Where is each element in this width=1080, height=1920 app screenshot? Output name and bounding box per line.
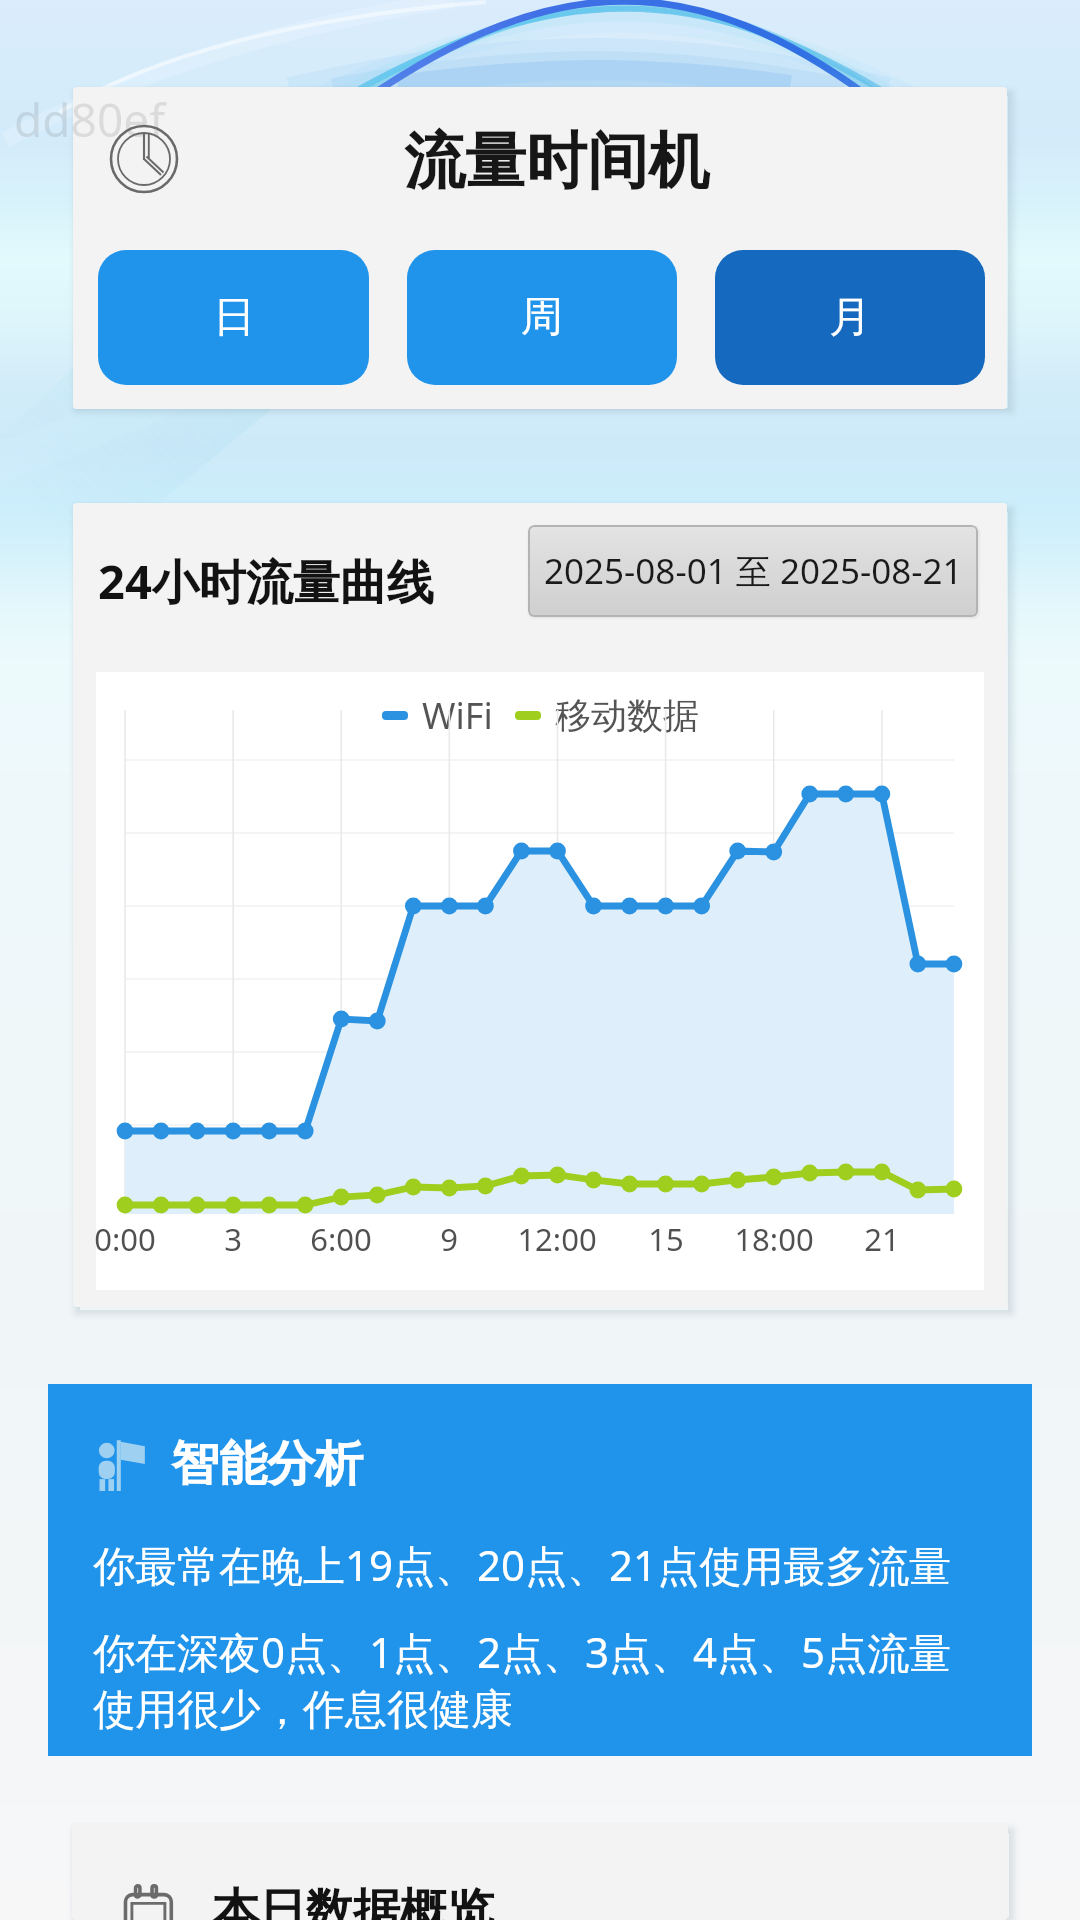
staticText: 2025-08-01 至 2025-08-21 [544, 547, 963, 595]
button[interactable]: 周 [407, 250, 677, 385]
staticText: 移动数据 [555, 693, 699, 738]
button[interactable]: 日 [98, 250, 369, 385]
staticText: 9 [369, 1218, 529, 1260]
staticText: 流量时间机 [404, 123, 709, 200]
staticText: 日 [213, 291, 255, 344]
staticText: 月 [829, 291, 871, 344]
staticText: 24小时流量曲线 [98, 549, 434, 613]
button[interactable]: Calendar [72, 1824, 1008, 1920]
staticText: 本日数据概览 [212, 1882, 494, 1920]
staticText: 21 [802, 1218, 962, 1260]
staticText: dd80ef [14, 88, 165, 151]
staticText: 12:00 [477, 1218, 637, 1260]
staticText: 智能分析 [171, 1434, 363, 1494]
staticText: 18:00 [694, 1218, 854, 1260]
button[interactable]: Clock [109, 124, 179, 194]
staticText: 3 [153, 1218, 313, 1260]
button[interactable]: 月 [715, 250, 985, 385]
staticText: 你在深夜0点、1点、2点、3点、4点、5点流量使用很少，作息很健康 [93, 1623, 969, 1736]
button[interactable]: 智能分析 [48, 1384, 1032, 1756]
staticText: 15 [586, 1218, 746, 1260]
staticText: WiFi [422, 691, 493, 740]
staticText: 周 [521, 291, 563, 344]
button[interactable]: 2025-08-01 至 2025-08-21 [528, 525, 978, 617]
other: Calendar [122, 1883, 180, 1920]
staticText: 你最常在晚上19点、20点、21点使用最多流量 [93, 1536, 952, 1593]
staticText: 0:00 [73, 1218, 205, 1260]
staticText: 6:00 [261, 1218, 421, 1260]
